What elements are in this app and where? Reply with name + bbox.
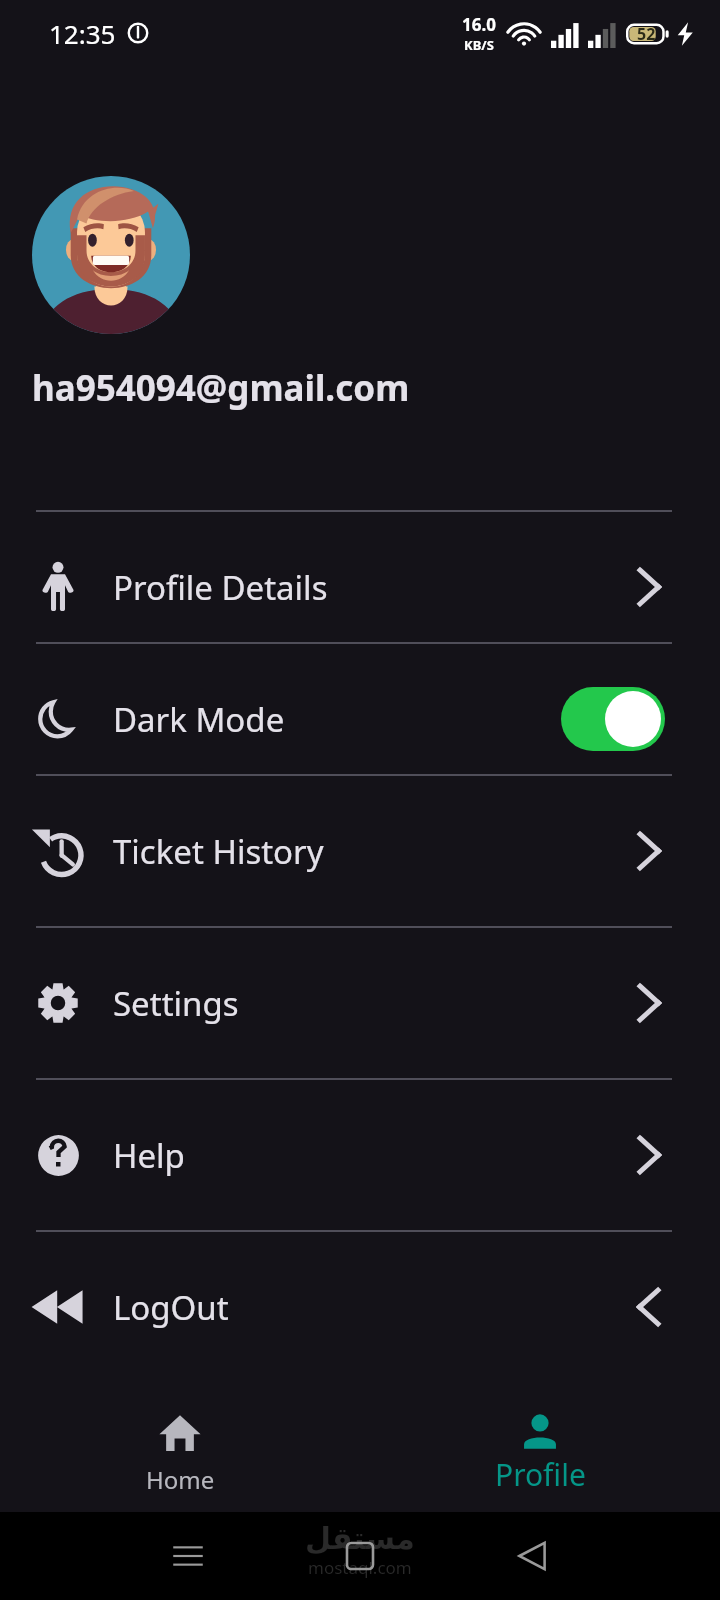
staticText: Ticket History: [113, 829, 324, 874]
staticText: Profile: [495, 1454, 586, 1495]
staticText: Profile Details: [113, 565, 328, 610]
button[interactable]: Profile: [360, 1390, 720, 1495]
button[interactable]: Back: [510, 1534, 554, 1578]
staticText: Home: [146, 1463, 215, 1496]
button[interactable]: Profile photo: [32, 176, 190, 334]
button[interactable]: Home: [0, 1390, 360, 1496]
staticText: ha954094@gmail.com: [32, 364, 410, 412]
staticText: KB/S: [464, 36, 494, 54]
button[interactable]: Help: [0, 1080, 720, 1230]
button[interactable]: Home: [338, 1534, 382, 1578]
staticText: Dark Mode: [113, 697, 285, 742]
button[interactable]: Profile Details: [0, 512, 720, 642]
button[interactable]: Ticket History: [0, 776, 720, 926]
staticText: 12:35: [49, 16, 116, 51]
button[interactable]: Dark Mode: [0, 644, 720, 774]
button[interactable]: Recent apps: [166, 1534, 210, 1578]
button[interactable]: LogOut: [0, 1232, 720, 1382]
staticText: mostaql.com: [308, 1556, 412, 1579]
button[interactable]: Dark mode toggle: [561, 687, 665, 751]
staticText: مستقل: [305, 1521, 415, 1556]
staticText: Help: [113, 1133, 185, 1178]
button[interactable]: Settings: [0, 928, 720, 1078]
staticText: Settings: [113, 981, 239, 1026]
staticText: 52: [637, 23, 656, 45]
staticText: LogOut: [113, 1285, 229, 1330]
staticText: 16.0: [462, 13, 496, 36]
